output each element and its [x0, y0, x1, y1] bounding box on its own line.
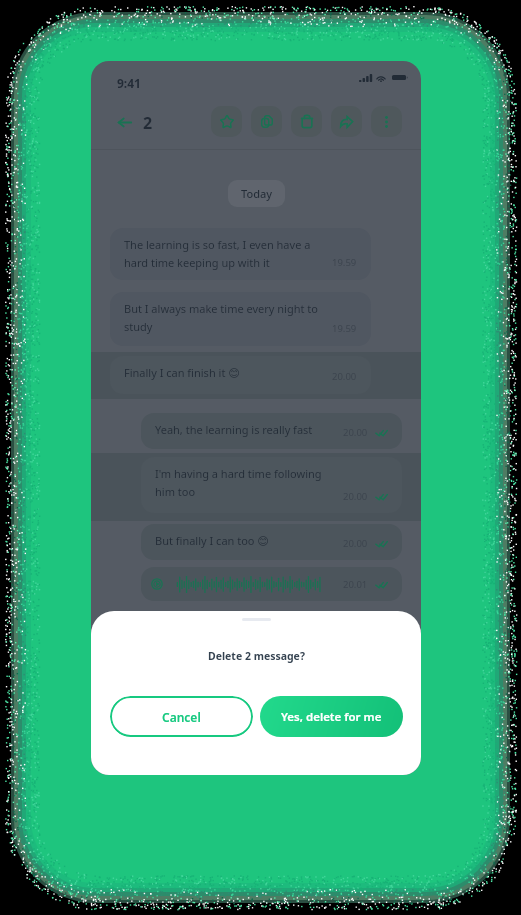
- button[interactable]: The learning is so fast, I even have a h…: [110, 228, 371, 280]
- staticText: Cancel: [162, 709, 201, 725]
- staticText: 19.59: [332, 256, 357, 269]
- button[interactable]: But finally I can too 😊: [141, 524, 402, 560]
- staticText: 19.59: [332, 322, 357, 335]
- staticText: But finally I can too 😊: [155, 533, 269, 548]
- button[interactable]: [91, 453, 421, 521]
- staticText: 2: [143, 112, 153, 134]
- button[interactable]: Yeah, the learning is really fast: [141, 413, 402, 449]
- staticText: Delete 2 message?: [208, 649, 305, 663]
- staticText: 20.00: [343, 426, 368, 439]
- staticText: But I always make time every night to st…: [124, 301, 318, 334]
- button[interactable]: Yes, delete for me: [260, 696, 403, 737]
- button[interactable]: Back: [110, 108, 138, 136]
- staticText: 9:41: [117, 75, 141, 91]
- button[interactable]: Copy: [251, 106, 282, 137]
- button[interactable]: 20.01: [141, 567, 402, 601]
- staticText: 20.00: [343, 490, 368, 503]
- staticText: 20.01: [343, 578, 368, 591]
- button[interactable]: I'm having a hard time following him too: [141, 457, 402, 513]
- button[interactable]: Forward: [331, 106, 362, 137]
- button[interactable]: Delete: [291, 106, 322, 137]
- staticText: Yeah, the learning is really fast: [155, 422, 313, 437]
- button[interactable]: Favorite: [211, 106, 242, 137]
- staticText: Yes, delete for me: [281, 709, 382, 725]
- staticText: Today: [241, 186, 273, 201]
- button[interactable]: Finally I can finish it 😊: [110, 356, 371, 394]
- staticText: 20.00: [343, 537, 368, 550]
- button[interactable]: [91, 352, 421, 399]
- staticText: The learning is so fast, I even have a h…: [124, 237, 311, 270]
- button[interactable]: Cancel: [110, 696, 253, 737]
- staticText: I'm having a hard time following him too: [155, 466, 322, 499]
- button[interactable]: But I always make time every night to st…: [110, 292, 371, 346]
- staticText: Finally I can finish it 😊: [124, 365, 240, 380]
- button[interactable]: More options: [371, 106, 402, 137]
- button[interactable]: Today: [228, 180, 285, 207]
- staticText: 20.00: [332, 370, 357, 383]
